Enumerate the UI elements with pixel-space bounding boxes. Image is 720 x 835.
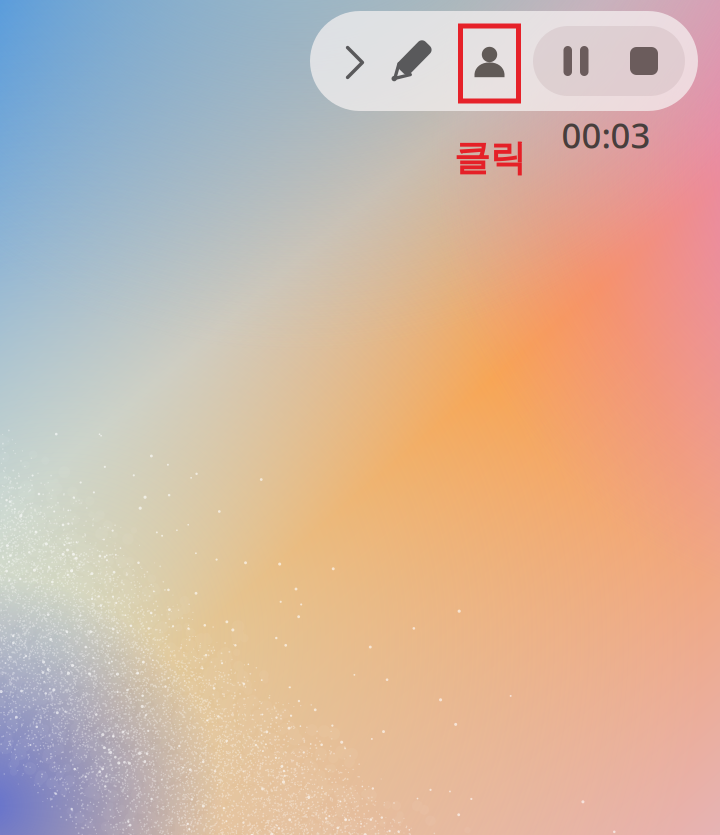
button[interactable]: Markup <box>388 38 434 84</box>
button[interactable]: Pause recording <box>563 46 588 76</box>
button[interactable]: Camera <box>458 23 521 103</box>
button[interactable]: Stop recording <box>630 47 658 75</box>
staticText: 00:03 <box>561 112 650 158</box>
staticText: 클릭 <box>454 136 526 180</box>
button[interactable]: Expand recording controls <box>345 45 364 79</box>
